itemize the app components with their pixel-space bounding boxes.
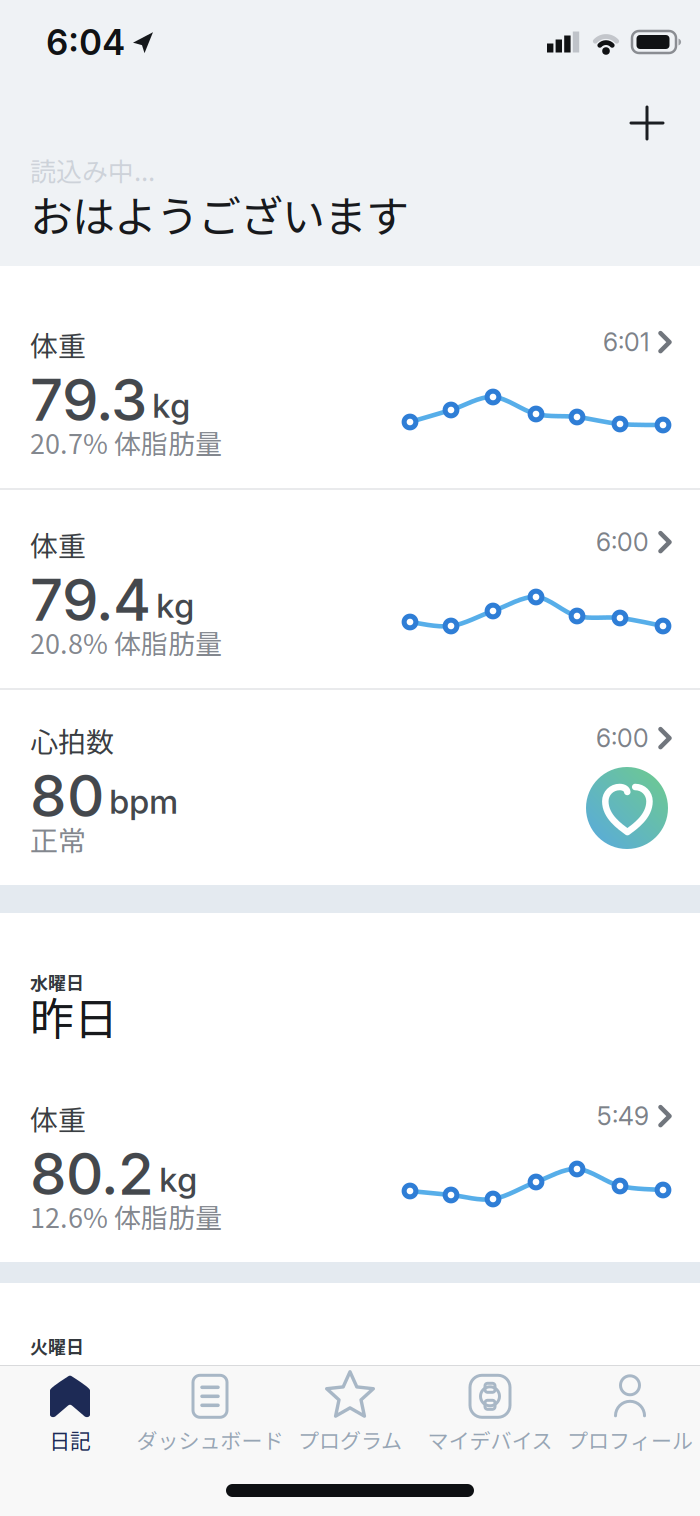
staticText: 体重 [30, 1098, 86, 1138]
staticText: 20.7% 体脂肪量 [30, 423, 222, 462]
staticText: マイデバイス [427, 1424, 552, 1455]
staticText: プロフィール [567, 1424, 693, 1455]
staticText: 水曜日 [30, 969, 84, 995]
staticText: 5:49 [597, 1101, 649, 1131]
staticText: 心拍数 [30, 720, 114, 760]
button[interactable]: Add [621, 97, 673, 149]
staticText: 20.8% 体脂肪量 [30, 623, 222, 662]
staticText: 火曜日 [30, 1333, 84, 1359]
staticText: ダッシュボード [136, 1424, 283, 1455]
staticText: 昨日 [30, 984, 118, 1048]
button[interactable]: 体重 [0, 266, 700, 488]
staticText: 日記 [49, 1424, 91, 1455]
button[interactable]: ダッシュボード [140, 1370, 280, 1458]
button[interactable]: プロフィール [560, 1370, 700, 1458]
button[interactable]: プログラム [280, 1370, 420, 1458]
staticText: kg [156, 586, 194, 626]
staticText: 正常 [30, 819, 86, 859]
button[interactable]: マイデバイス [420, 1370, 560, 1458]
staticText: おはようございます [30, 183, 409, 245]
button[interactable]: 心拍数 [0, 690, 700, 885]
button[interactable]: 体重 [0, 490, 700, 688]
staticText: 体重 [30, 524, 86, 564]
staticText: 読込み中... [30, 151, 155, 189]
staticText: 6:04 [46, 21, 125, 63]
staticText: bpm [109, 782, 178, 822]
button[interactable]: 日記 [0, 1370, 140, 1458]
staticText: 80.2 [30, 1138, 154, 1209]
staticText: 6:01 [603, 327, 649, 357]
staticText: 6:00 [596, 723, 649, 753]
staticText: 80 [30, 760, 104, 831]
staticText: 12.6% 体脂肪量 [30, 1197, 222, 1236]
staticText: 体重 [30, 324, 86, 364]
button[interactable]: 体重 [0, 1040, 700, 1262]
staticText: 79.4 [30, 564, 151, 635]
staticText: 6:00 [596, 527, 649, 557]
staticText: プログラム [298, 1424, 402, 1455]
staticText: kg [159, 1160, 197, 1200]
staticText: 79.3 [30, 364, 147, 435]
staticText: kg [152, 386, 190, 426]
